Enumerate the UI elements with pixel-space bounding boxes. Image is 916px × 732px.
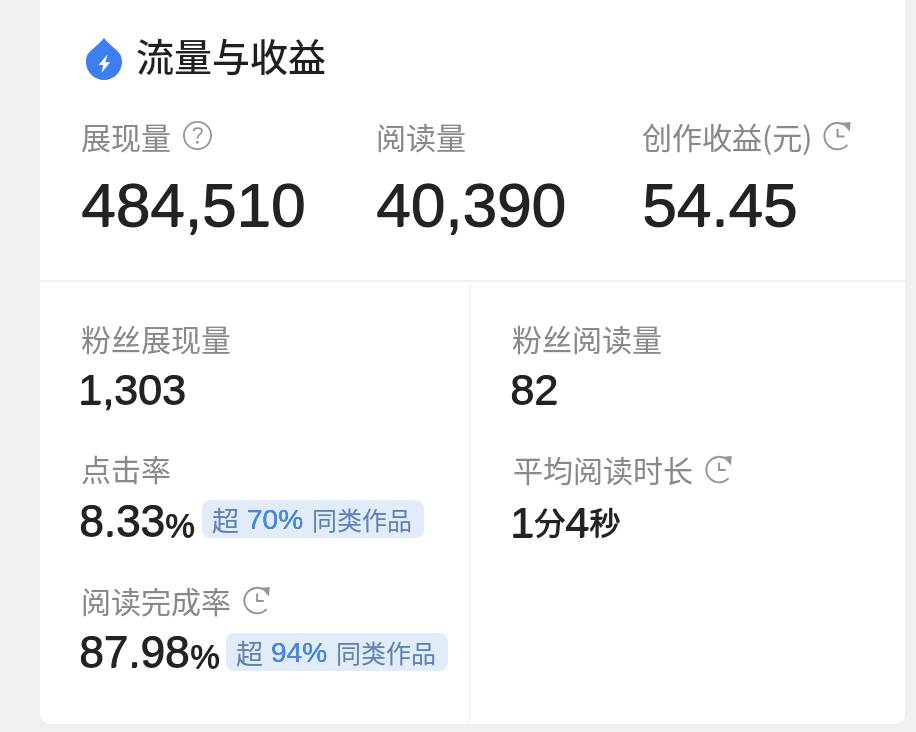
staticText: % <box>190 638 220 675</box>
staticText: 1,303 <box>79 365 187 413</box>
button[interactable]: 点击率 <box>74 436 464 554</box>
staticText: % <box>191 638 221 675</box>
staticText: 粉丝阅读量 <box>512 316 662 359</box>
button[interactable]: 阅读完成率 <box>74 568 464 698</box>
staticText: 分 <box>534 498 565 543</box>
staticText: 点击率 <box>81 446 171 489</box>
staticText: 同类作品 <box>336 634 437 670</box>
staticText: 70% <box>247 504 304 535</box>
other: Data refresh time <box>823 120 854 151</box>
staticText: 秒 <box>590 498 621 543</box>
button[interactable]: 超 <box>202 500 424 538</box>
staticText: 4 <box>566 498 590 546</box>
button[interactable]: 粉丝阅读量 <box>505 306 895 424</box>
staticText: % <box>190 639 220 676</box>
staticText: 87.98 <box>80 627 191 676</box>
staticText: 展现量 <box>81 114 171 157</box>
staticText: 94% <box>271 637 328 668</box>
staticText: 54.45 <box>642 170 798 239</box>
staticText: 54.45 <box>643 170 799 239</box>
staticText: 同类作品 <box>312 501 413 537</box>
button[interactable]: 平均阅读时长 <box>505 436 895 554</box>
staticText: 4 <box>565 498 589 546</box>
staticText: 秒 <box>589 499 620 544</box>
staticText: 94% <box>271 637 328 668</box>
other: Data refresh time <box>243 585 273 615</box>
staticText: 87.98 <box>79 627 190 676</box>
staticText: 40,390 <box>377 170 567 239</box>
button[interactable]: 创作收益(元) <box>635 104 895 234</box>
staticText: 1,303 <box>78 366 186 414</box>
other: Data refresh time <box>705 454 735 484</box>
staticText: 94% <box>271 637 328 668</box>
other: What does impressions mean <box>183 121 212 150</box>
staticText: 阅读完成率 <box>81 578 231 621</box>
staticText: 54.45 <box>642 171 798 240</box>
staticText: 阅读量 <box>376 114 466 157</box>
staticText: 粉丝展现量 <box>81 316 231 359</box>
staticText: 82 <box>511 365 559 413</box>
button[interactable]: 粉丝展现量 <box>74 306 464 424</box>
staticText: % <box>165 508 195 545</box>
staticText: 70% <box>247 504 304 535</box>
staticText: 70% <box>247 504 304 535</box>
staticText: 秒 <box>589 498 620 543</box>
staticText: 82 <box>510 366 558 414</box>
button[interactable]: 展现量 <box>74 104 364 234</box>
staticText: 8.33 <box>80 496 166 545</box>
button[interactable]: 超 <box>226 633 448 671</box>
staticText: 82 <box>510 365 558 413</box>
staticText: 8.33 <box>79 497 165 546</box>
staticText: 创作收益(元) <box>642 114 813 157</box>
button[interactable]: 阅读量 <box>369 104 629 234</box>
staticText: 484,510 <box>81 171 306 240</box>
staticText: 40,390 <box>376 170 566 239</box>
staticText: 流量与收益 <box>136 27 327 82</box>
staticText: 1 <box>510 498 534 546</box>
staticText: 超 <box>236 633 263 671</box>
staticText: 1 <box>510 499 534 547</box>
staticText: 484,510 <box>81 170 306 239</box>
staticText: 分 <box>534 499 565 544</box>
staticText: 4 <box>565 499 589 547</box>
staticText: % <box>166 507 196 544</box>
staticText: 超 <box>212 500 239 538</box>
staticText: 平均阅读时长 <box>513 447 693 490</box>
staticText: % <box>165 507 195 544</box>
staticText: 40,390 <box>376 171 566 240</box>
staticText: 484,510 <box>82 170 307 239</box>
staticText: 87.98 <box>79 628 190 677</box>
staticText: 1 <box>511 498 535 546</box>
button[interactable]: 流量与收益 <box>80 23 335 86</box>
staticText: 1,303 <box>78 365 186 413</box>
staticText: 分 <box>535 498 566 543</box>
staticText: 8.33 <box>79 496 165 545</box>
